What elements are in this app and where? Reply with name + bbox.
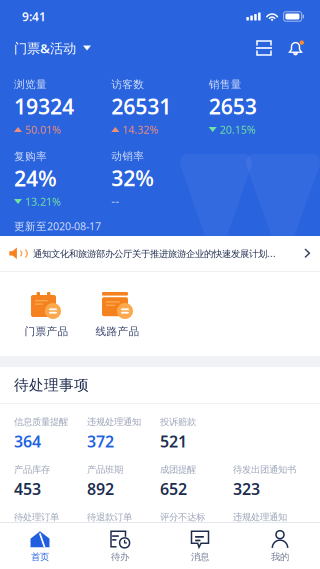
staticText: 信息质量提醒 <box>14 416 68 428</box>
staticText: 19324 <box>14 92 74 120</box>
button[interactable]: 待发出团通知书 <box>233 464 306 499</box>
staticText: 2653 <box>209 92 257 120</box>
staticText: 门票&活动 <box>14 39 76 57</box>
staticText: 652 <box>160 478 187 499</box>
staticText: 521 <box>160 431 187 452</box>
staticText: 待发出团通知书 <box>233 464 296 475</box>
button[interactable]: 信息质量提醒 <box>14 416 87 452</box>
staticText: 访客数 <box>111 78 144 91</box>
button[interactable]: 成团提醒 <box>160 464 233 499</box>
staticText: 110 <box>14 526 41 547</box>
staticText: 372 <box>87 431 114 452</box>
staticText: 50.01% <box>25 122 61 137</box>
button[interactable]: 我的 <box>240 522 320 569</box>
button[interactable]: 线路产品 <box>82 291 153 338</box>
staticText: 14.32% <box>122 122 158 137</box>
staticText: 违规处理通知 <box>87 416 141 428</box>
staticText: 892 <box>87 478 114 499</box>
staticText: 我的 <box>271 551 289 563</box>
staticText: 待处理订单 <box>14 511 59 523</box>
staticText: 消息 <box>191 551 209 563</box>
button[interactable]: 产品库存 <box>14 464 87 499</box>
staticText: 产品班期 <box>87 464 123 475</box>
staticText: 24% <box>14 164 57 192</box>
button[interactable]: 违规处理通知 <box>233 511 306 547</box>
staticText: 待办 <box>111 551 129 563</box>
staticText: 投诉赔款 <box>160 416 196 428</box>
staticText: 32% <box>111 164 154 192</box>
staticText: 通知文化和旅游部办公厅关于推进旅游企业的快速发展计划... <box>33 247 276 260</box>
button[interactable]: 产品班期 <box>87 464 160 499</box>
button[interactable]: 消息 <box>160 522 240 569</box>
staticText: 违规处理通知 <box>233 511 287 523</box>
staticText: 更新至2020-08-17 <box>14 219 101 233</box>
staticText: 线路产品 <box>95 325 139 338</box>
button[interactable]: 待处理订单 <box>14 511 87 547</box>
button[interactable]: 投诉赔款 <box>160 416 233 452</box>
staticText: 364 <box>14 431 41 452</box>
button[interactable]: 通知 <box>287 40 304 56</box>
staticText: 成团提醒 <box>160 464 196 475</box>
staticText: 销售量 <box>209 78 242 91</box>
staticText: 9:41 <box>22 8 46 24</box>
button[interactable]: 扫一扫 <box>256 40 272 56</box>
button[interactable]: 首页 <box>0 522 80 569</box>
staticText: 复购率 <box>14 150 47 163</box>
button[interactable]: 评分不达标 <box>160 511 233 547</box>
staticText: 453 <box>14 478 41 499</box>
staticText: 门票产品 <box>24 325 68 338</box>
button[interactable]: 待办 <box>80 522 160 569</box>
staticText: 13.21% <box>25 194 61 209</box>
staticText: 323 <box>233 478 260 499</box>
staticText: 20.15% <box>220 122 256 137</box>
staticText: 待处理事项 <box>14 376 89 394</box>
button[interactable]: 通知文化和旅游部办公厅关于推进旅游企业的快速发展计划... <box>0 236 320 271</box>
staticText: 产品库存 <box>14 464 50 475</box>
staticText: 待退款订单 <box>87 511 132 523</box>
button[interactable]: 违规处理通知 <box>87 416 160 452</box>
button[interactable]: 待退款订单 <box>87 511 160 547</box>
staticText: 评分不达标 <box>160 511 205 523</box>
staticText: 浏览量 <box>14 78 47 91</box>
staticText: 26531 <box>111 92 171 120</box>
staticText: -- <box>111 193 119 209</box>
button[interactable]: 门票产品 <box>11 291 82 338</box>
button[interactable]: 门票&活动 <box>14 39 91 57</box>
staticText: 首页 <box>31 551 49 563</box>
staticText: 动销率 <box>111 150 144 163</box>
